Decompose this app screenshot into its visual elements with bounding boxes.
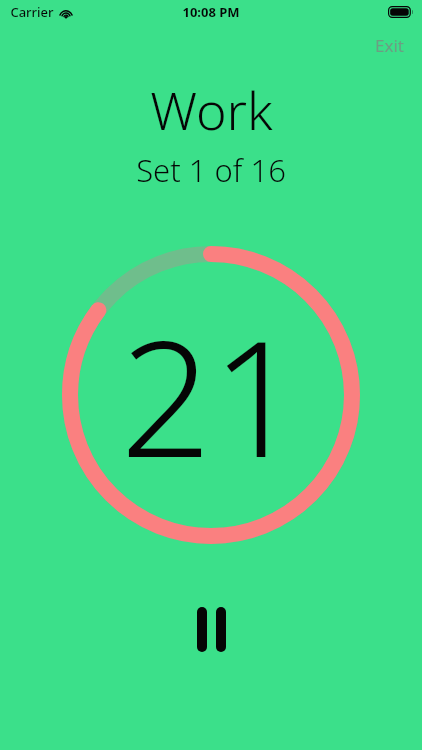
button[interactable]: Pause timer bbox=[179, 597, 244, 662]
staticText: 10:08 PM bbox=[182, 3, 240, 21]
staticText: Exit bbox=[375, 34, 404, 57]
staticText: 21 bbox=[120, 286, 303, 504]
staticText: Set 1 of 16 bbox=[136, 149, 286, 191]
staticText: Carrier bbox=[10, 3, 54, 21]
button[interactable]: Exit bbox=[365, 30, 414, 61]
staticText: Work bbox=[150, 74, 273, 145]
